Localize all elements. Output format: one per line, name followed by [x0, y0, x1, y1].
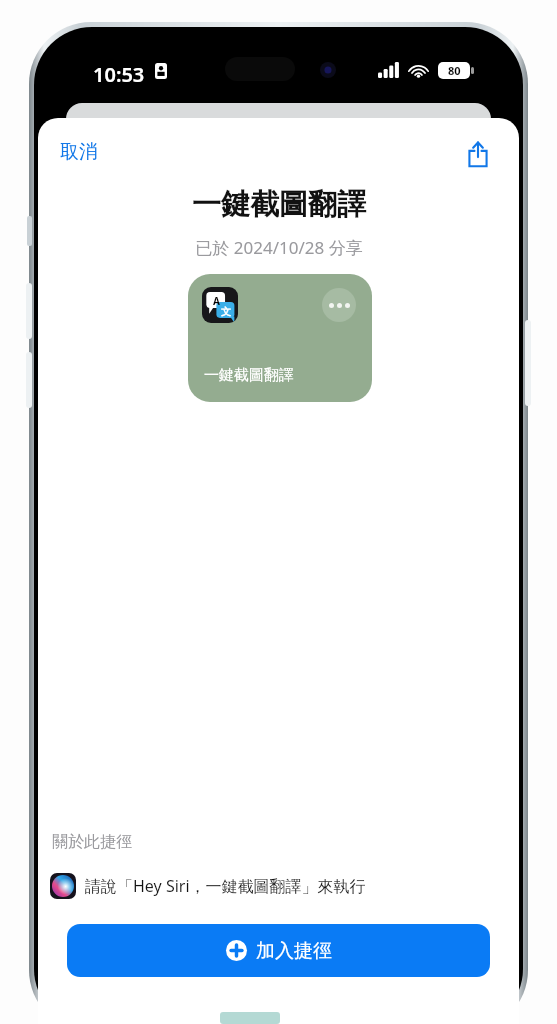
button[interactable]: 加入捷徑: [67, 924, 490, 977]
staticText: 請說「Hey Siri，一鍵截圖翻譯」來執行: [85, 875, 366, 897]
button[interactable]: A: [188, 274, 372, 402]
staticText: 已於 2024/10/28 分享: [195, 236, 363, 259]
staticText: 10:53: [93, 61, 145, 88]
staticText: 一鍵截圖翻譯: [204, 366, 294, 385]
staticText: 關於此捷徑: [52, 832, 132, 852]
staticText: A: [213, 294, 220, 308]
staticText: 加入捷徑: [256, 939, 332, 963]
staticText: 取消: [60, 140, 98, 164]
staticText: 80: [448, 63, 461, 78]
staticText: 一鍵截圖翻譯: [192, 186, 366, 223]
button[interactable]: 請說「Hey Siri，一鍵截圖翻譯」來執行: [50, 866, 366, 906]
staticText: 文: [221, 305, 231, 318]
button[interactable]: 分享: [456, 132, 500, 176]
button[interactable]: 更多選項: [322, 288, 356, 322]
button[interactable]: 取消: [52, 134, 106, 170]
